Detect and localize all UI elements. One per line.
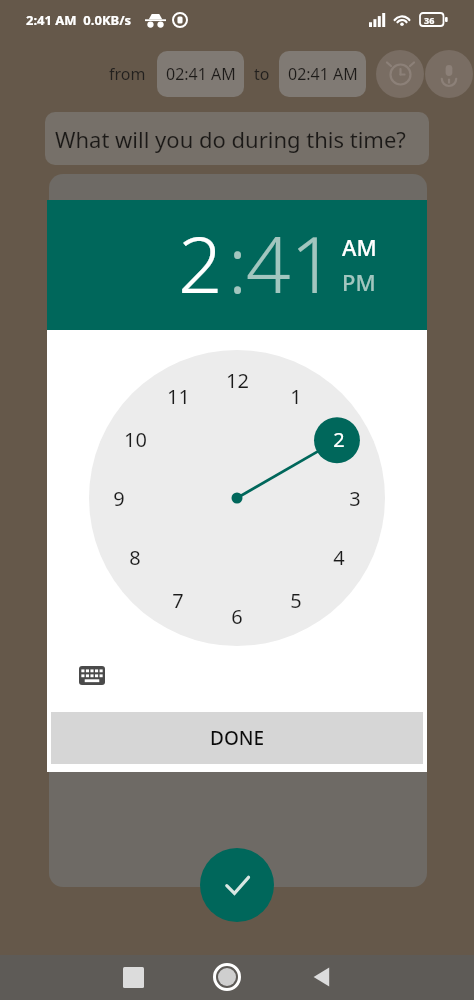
button[interactable]: 10 — [115, 419, 155, 459]
staticText: DONE — [210, 725, 265, 751]
staticText: 7 — [172, 587, 184, 614]
button[interactable]: What will you do during this time? — [45, 112, 429, 165]
staticText: 02:41 AM — [166, 63, 236, 85]
staticText: 6 — [231, 603, 243, 630]
staticText: 2 — [333, 426, 345, 453]
button[interactable]: 6 — [217, 596, 257, 636]
button[interactable]: DONE — [51, 712, 423, 764]
staticText: 5 — [290, 587, 302, 614]
staticText: 4 — [333, 544, 345, 571]
button[interactable]: Back — [310, 965, 334, 989]
staticText: : — [228, 210, 248, 316]
button[interactable]: 8 — [115, 537, 155, 577]
staticText: What will you do during this time? — [55, 124, 406, 154]
button[interactable]: 12 — [217, 360, 257, 400]
staticText: 1 — [290, 383, 302, 410]
button[interactable]: Switch to text input — [75, 658, 109, 692]
staticText: 9 — [113, 485, 125, 512]
button[interactable]: 5 — [276, 580, 316, 620]
staticText: 02:41 AM — [288, 63, 358, 85]
button[interactable]: 2 — [319, 419, 359, 459]
button[interactable]: PM — [342, 267, 376, 297]
button[interactable]: 3 — [335, 478, 375, 518]
staticText: 36 — [424, 14, 435, 26]
staticText: from — [109, 63, 146, 85]
button[interactable]: 2 — [178, 210, 223, 316]
button[interactable]: Set alarm — [376, 50, 424, 98]
button[interactable]: Recents — [123, 967, 144, 988]
staticText: 3 — [349, 485, 361, 512]
button[interactable]: 4 — [319, 537, 359, 577]
staticText: 2:41 AM 0.0KB/s — [26, 11, 132, 29]
button[interactable]: 02:41 AM — [157, 51, 244, 97]
button[interactable]: AM — [342, 232, 377, 262]
staticText: 8 — [129, 544, 141, 571]
staticText: PM — [342, 267, 376, 297]
button[interactable]: 41 — [246, 210, 336, 316]
staticText: 12 — [226, 367, 249, 394]
button[interactable]: Voice input — [425, 50, 473, 98]
button[interactable]: 7 — [158, 580, 198, 620]
button[interactable]: Confirm — [200, 848, 274, 922]
staticText: to — [254, 63, 270, 85]
staticText: AM — [342, 232, 377, 262]
staticText: 10 — [124, 426, 147, 453]
button[interactable]: 1 — [276, 376, 316, 416]
button[interactable]: Home — [213, 963, 241, 991]
button[interactable]: 11 — [158, 376, 198, 416]
staticText: 11 — [167, 383, 190, 410]
button[interactable]: 9 — [99, 478, 139, 518]
button[interactable]: 02:41 AM — [279, 51, 366, 97]
